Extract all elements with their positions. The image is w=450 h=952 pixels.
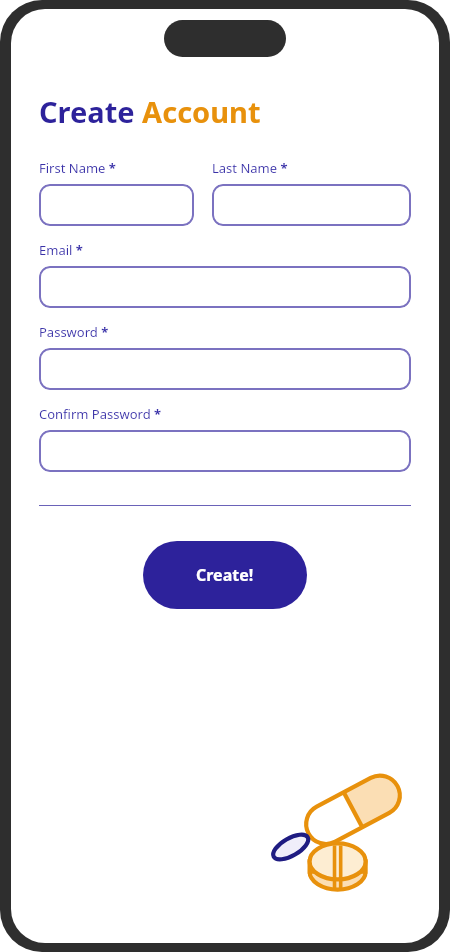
button[interactable] <box>39 266 411 308</box>
staticText: Last Name * <box>212 159 288 177</box>
staticText: Password * <box>39 323 109 341</box>
staticText: Create! <box>196 564 254 586</box>
staticText: Email * <box>39 241 83 259</box>
staticText: First Name * <box>39 159 116 177</box>
staticText: Create Account <box>39 92 261 131</box>
button[interactable] <box>39 184 194 226</box>
button[interactable]: Create! <box>143 541 307 609</box>
staticText: Confirm Password * <box>39 405 162 423</box>
button[interactable] <box>39 430 411 472</box>
button[interactable] <box>212 184 411 226</box>
button[interactable] <box>39 348 411 390</box>
